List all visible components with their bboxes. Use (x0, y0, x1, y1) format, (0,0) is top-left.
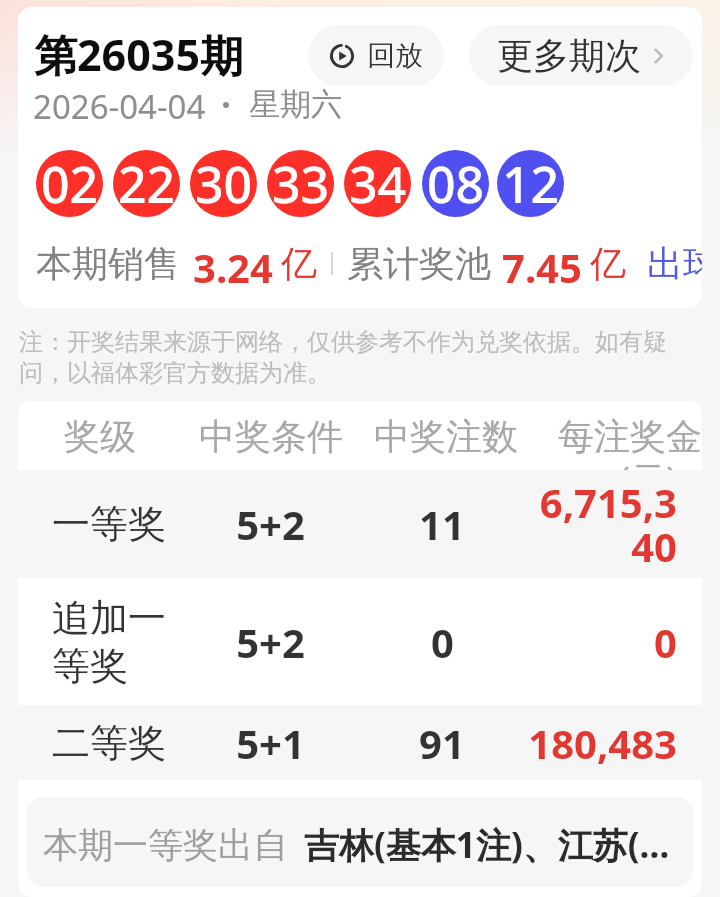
staticText: 3.24 (193, 240, 273, 286)
staticText: 奖级 (64, 414, 136, 459)
other: More draws (652, 49, 666, 63)
staticText: 180,483 (528, 716, 677, 770)
staticText: 追加一等奖 (52, 594, 182, 690)
staticText: 0 (654, 615, 677, 669)
staticText: 第26035期 (34, 25, 243, 84)
staticText: 累计奖池 (347, 241, 491, 286)
staticText: 中奖条件 (199, 414, 343, 459)
button[interactable]: 更多期次 (469, 25, 693, 86)
staticText: 更多期次 (497, 33, 641, 78)
staticText: 5+1 (236, 716, 305, 770)
staticText: 中奖注数 (374, 414, 518, 459)
button[interactable]: 出球顺序 (647, 241, 702, 286)
staticText: 亿 (590, 241, 626, 286)
staticText: 本期一等奖出自 (43, 823, 288, 867)
button[interactable]: 二等奖 (18, 705, 702, 780)
staticText: 33 (272, 150, 330, 217)
staticText: 5+2 (236, 615, 305, 669)
staticText: 注：开奖结果来源于网络，仅供参考不作为兑奖依据。如有疑问，以福体彩官方数据为准。 (19, 327, 679, 388)
staticText: 二等奖 (52, 719, 166, 767)
staticText: 每注奖金 (558, 414, 702, 459)
staticText: 出球顺序 (647, 241, 702, 286)
button[interactable]: 追加一等奖 (18, 578, 702, 705)
staticText: 12 (502, 150, 560, 217)
staticText: 11 (419, 497, 465, 551)
staticText: 本期销售 (36, 241, 180, 286)
staticText: 22 (118, 150, 176, 217)
staticText: (元) (619, 455, 677, 504)
staticText: 6,715,340 (517, 475, 677, 574)
staticText: 亿 (281, 241, 317, 286)
other: Replay (330, 44, 354, 68)
button[interactable]: 一等奖 (18, 470, 702, 578)
button[interactable]: 本期一等奖出自 (27, 797, 693, 887)
staticText: 一等奖 (52, 500, 166, 548)
staticText: 回放 (367, 38, 423, 73)
staticText: 星期六 (249, 85, 342, 124)
staticText: 7.45 (502, 240, 582, 286)
staticText: 30 (195, 150, 253, 217)
button[interactable]: Replay (308, 25, 444, 86)
staticText: 5+2 (236, 497, 305, 551)
staticText: 吉林(基本1注)、江苏(基本1注) (304, 821, 681, 869)
staticText: 02 (41, 150, 99, 217)
staticText: 0 (431, 615, 454, 669)
staticText: 2026-04-04 (33, 84, 206, 124)
staticText: 91 (419, 716, 465, 770)
staticText: 34 (349, 150, 407, 217)
staticText: 08 (427, 150, 485, 217)
